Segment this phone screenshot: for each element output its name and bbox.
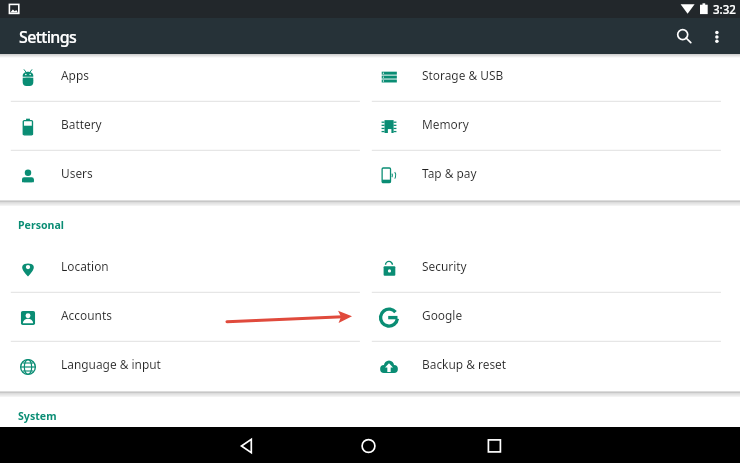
staticText: Users (61, 165, 93, 181)
button[interactable]: Memory (361, 102, 740, 151)
button[interactable]: Home (350, 428, 386, 463)
staticText: Backup & reset (422, 356, 507, 372)
button[interactable]: Back (229, 428, 265, 463)
staticText: Apps (61, 67, 89, 83)
staticText: Tap & pay (422, 165, 477, 181)
staticText: Google (422, 307, 463, 323)
button[interactable]: Apps (0, 53, 361, 102)
button[interactable]: More options (699, 18, 735, 54)
staticText: Settings (19, 26, 77, 48)
button[interactable]: Battery (0, 102, 361, 151)
button[interactable]: Search (665, 18, 701, 54)
button[interactable]: Accounts (0, 293, 361, 342)
staticText: Memory (422, 116, 469, 132)
button[interactable]: Location (0, 244, 361, 293)
staticText: 3:32 (713, 1, 736, 18)
button[interactable]: Backup & reset (361, 342, 740, 391)
staticText: Location (61, 258, 109, 274)
staticText: Language & input (61, 356, 161, 372)
button[interactable]: Tap & pay (361, 151, 740, 200)
button[interactable]: Language & input (0, 342, 361, 391)
staticText: Security (422, 258, 467, 274)
staticText: System (18, 409, 57, 423)
button[interactable]: Security (361, 244, 740, 293)
staticText: Accounts (61, 307, 112, 323)
button[interactable]: Users (0, 151, 361, 200)
button[interactable]: Google (361, 293, 740, 342)
staticText: Battery (61, 116, 102, 132)
button[interactable]: Storage & USB (361, 53, 740, 102)
button[interactable]: Recent apps (476, 428, 512, 463)
staticText: Storage & USB (422, 67, 504, 83)
staticText: Personal (18, 218, 64, 232)
